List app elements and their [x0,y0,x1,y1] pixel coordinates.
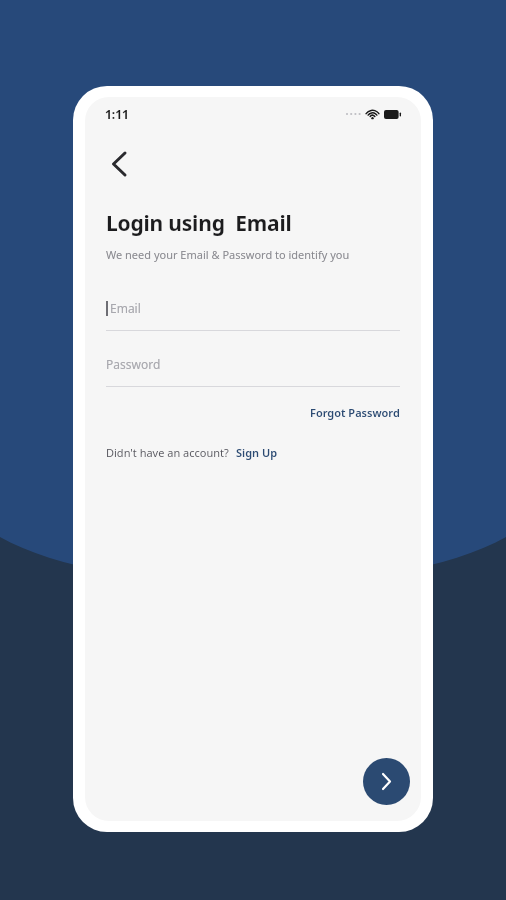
staticText: Login using Email [106,209,292,238]
button[interactable]: Continue [363,758,410,805]
staticText: Email [110,300,141,316]
staticText: Didn't have an account? [106,445,229,460]
staticText: Sign Up [236,445,278,460]
button[interactable]: Email [106,300,400,331]
staticText: Password [106,356,161,372]
button[interactable]: Back [97,143,139,185]
button[interactable]: Sign Up [236,442,278,463]
button[interactable]: Forgot Password [310,401,400,424]
button[interactable]: Password [106,356,400,387]
staticText: Forgot Password [310,405,400,420]
staticText: We need your Email & Password to identif… [106,247,350,262]
staticText: 1:11 [105,106,129,122]
